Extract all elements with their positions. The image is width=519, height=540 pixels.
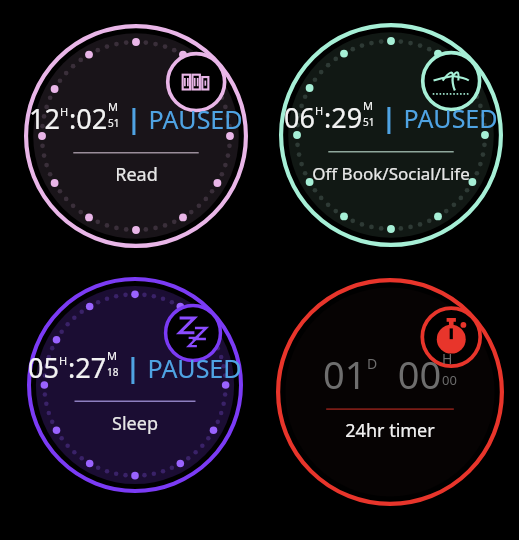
staticText: PAUSED bbox=[142, 102, 243, 136]
button[interactable]: 12 bbox=[24, 24, 248, 248]
staticText: | bbox=[120, 101, 142, 136]
staticText: | bbox=[119, 350, 141, 385]
staticText: 01 bbox=[323, 348, 367, 400]
staticText: PAUSED bbox=[397, 101, 498, 135]
staticText: M bbox=[108, 99, 118, 114]
staticText: :02 bbox=[69, 100, 108, 137]
staticText: M bbox=[363, 98, 373, 113]
button[interactable]: 01 bbox=[276, 278, 504, 506]
staticText: Sleep bbox=[112, 411, 158, 436]
staticText: H bbox=[60, 104, 69, 119]
button[interactable]: 05 bbox=[27, 277, 243, 493]
staticText: Off Book/Social/Life bbox=[312, 162, 470, 185]
staticText: Read bbox=[115, 162, 158, 187]
staticText: 05 bbox=[28, 349, 59, 386]
staticText: PAUSED bbox=[141, 351, 242, 385]
button[interactable]: 06 bbox=[279, 23, 503, 247]
staticText: H bbox=[59, 353, 68, 368]
staticText: 18 bbox=[107, 365, 119, 379]
staticText: H bbox=[315, 103, 324, 118]
staticText: 51 bbox=[108, 116, 120, 130]
staticText: :29 bbox=[324, 99, 363, 136]
staticText: D bbox=[367, 354, 378, 373]
staticText: 51 bbox=[363, 115, 375, 129]
staticText: 06 bbox=[284, 99, 315, 136]
staticText: 12 bbox=[29, 100, 60, 137]
staticText: :27 bbox=[68, 349, 107, 386]
staticText: H bbox=[442, 349, 453, 368]
staticText: | bbox=[375, 100, 397, 135]
staticText: 24hr timer bbox=[345, 418, 435, 443]
staticText: 00 bbox=[442, 371, 457, 389]
staticText: M bbox=[107, 348, 117, 363]
staticText: 00 bbox=[378, 348, 442, 400]
